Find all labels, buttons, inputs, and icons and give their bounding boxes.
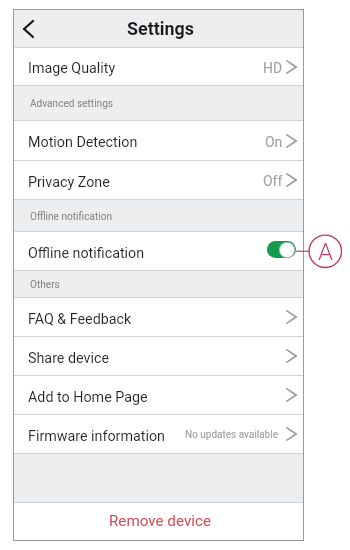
button[interactable]: Share device [14, 337, 303, 375]
staticText: HD [263, 60, 283, 76]
button[interactable]: Add to Home Page [14, 376, 303, 414]
staticText: Offline notification [30, 211, 112, 223]
button[interactable]: Image Quality [14, 48, 303, 85]
button[interactable]: Remove device [14, 503, 303, 540]
button[interactable]: Privacy Zone [14, 161, 303, 199]
button[interactable]: FAQ & Feedback [14, 298, 303, 336]
staticText: Settings [127, 18, 194, 39]
staticText: Off [263, 173, 283, 189]
staticText: Remove device [109, 512, 211, 530]
staticText: Share device [28, 350, 109, 367]
staticText: Privacy Zone [28, 174, 110, 191]
staticText: No updates available [185, 429, 278, 441]
button[interactable]: Firmware information [14, 415, 303, 453]
button[interactable]: Offline notification toggle [267, 241, 296, 258]
button[interactable]: Motion Detection [14, 121, 303, 160]
staticText: Motion Detection [28, 134, 138, 151]
staticText: Firmware information [28, 428, 165, 445]
staticText: FAQ & Feedback [28, 311, 132, 328]
staticText: Add to Home Page [28, 389, 148, 406]
staticText: Offline notification [28, 245, 145, 262]
staticText: Advanced settings [30, 98, 114, 110]
staticText: On [265, 134, 283, 150]
button[interactable]: Back [12, 13, 44, 45]
staticText: A [318, 238, 333, 266]
staticText: Others [30, 279, 60, 291]
staticText: Image Quality [28, 60, 116, 77]
